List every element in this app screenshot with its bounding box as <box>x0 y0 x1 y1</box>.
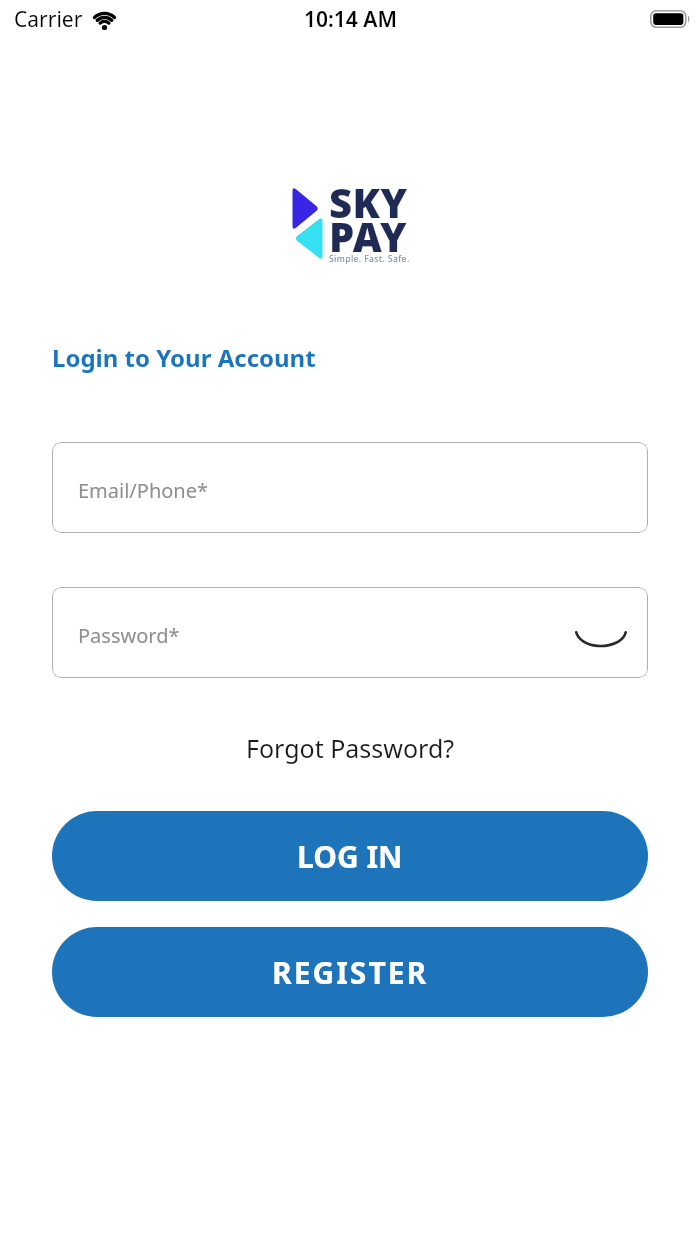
button[interactable]: Email/Phone* <box>52 442 648 533</box>
button[interactable]: REGISTER <box>52 927 648 1017</box>
staticText: Carrier <box>14 5 83 34</box>
button[interactable]: Password* <box>52 587 648 678</box>
staticText: Login to Your Account <box>52 341 316 374</box>
button[interactable]: Forgot Password? <box>0 731 700 765</box>
staticText: Email/Phone* <box>78 477 209 504</box>
staticText: Password* <box>78 622 180 649</box>
staticText: 10:14 AM <box>304 5 397 34</box>
staticText: Forgot Password? <box>246 731 455 765</box>
staticText: Simple. Fast. Safe. <box>329 253 410 265</box>
staticText: PAY <box>329 209 407 263</box>
button[interactable]: LOG IN <box>52 811 648 901</box>
staticText: LOG IN <box>297 836 403 877</box>
staticText: REGISTER <box>272 952 429 993</box>
staticText: SKY <box>329 175 408 229</box>
